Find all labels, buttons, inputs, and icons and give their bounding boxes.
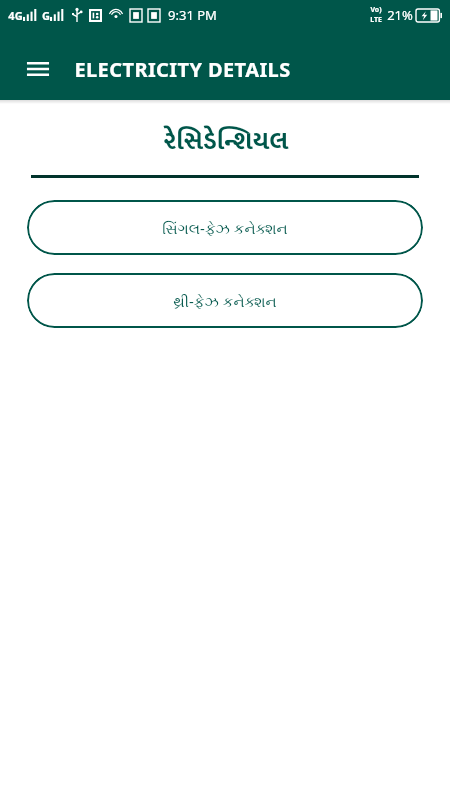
staticText: 21% [387,6,413,24]
staticText: Vo) [370,5,382,15]
staticText: સિંગલ-ફેઝ કનેક્શન [162,218,288,238]
staticText: રેસિડેન્શિયલ [163,120,288,163]
staticText: 4G [8,8,23,23]
staticText: 9:31 PM [168,6,217,24]
staticText: LTE [370,15,382,25]
button[interactable]: Open navigation menu [16,47,60,91]
staticText: G [42,8,50,23]
button[interactable]: થ્રી-ફેઝ કનેક્શન [27,273,423,328]
button[interactable]: સિંગલ-ફેઝ કનેક્શન [27,200,423,255]
staticText: થ્રી-ફેઝ કનેક્શન [173,291,277,311]
staticText: ELECTRICITY DETAILS [74,56,291,83]
